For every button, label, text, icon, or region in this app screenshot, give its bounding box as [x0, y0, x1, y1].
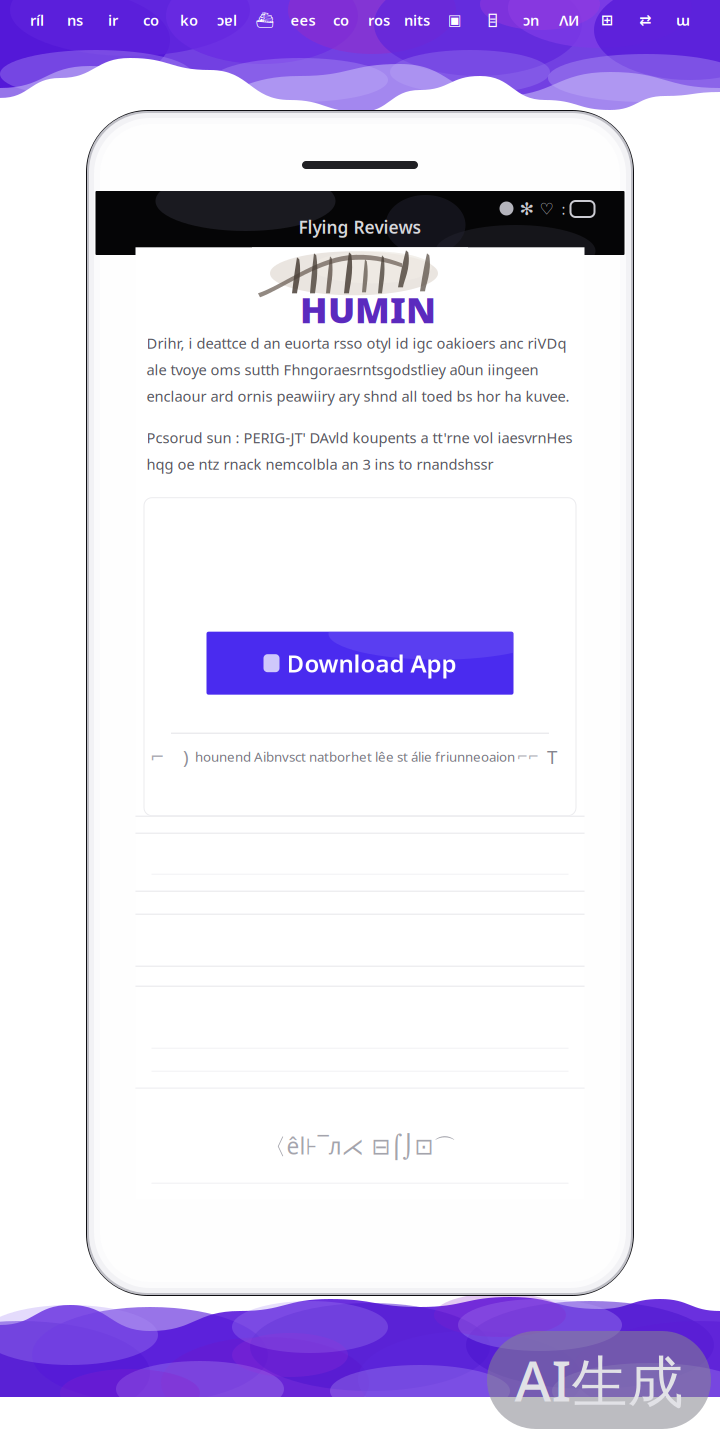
button[interactable]: Toolbar item 3 — [94, 6, 132, 34]
staticText: ɔɐl — [217, 10, 237, 30]
button[interactable]: Toolbar item 5 — [170, 6, 208, 34]
staticText: ale tvoye oms sutth Fhngoraesrntsgodstli… — [146, 360, 538, 379]
button[interactable]: Toolbar item 2 — [56, 6, 94, 34]
staticText: ⇄ — [639, 12, 651, 28]
staticText: ɔn — [523, 10, 539, 30]
button[interactable]: Toolbar item 16 — [588, 6, 626, 34]
staticText: Pcsorud sun : PERIG-JT' DAvld koupents a… — [146, 428, 572, 447]
staticText: ▣ — [448, 12, 462, 28]
staticText: ríl — [30, 10, 44, 30]
staticText: ⌸ — [488, 10, 497, 30]
staticText: AI生成 — [514, 1343, 683, 1417]
staticText: hqg oe ntz rnack nemcolbla an 3 ins to r… — [146, 454, 493, 474]
button[interactable]: AI generated watermark — [487, 1331, 711, 1429]
button[interactable]: Toolbar item 1 — [18, 6, 56, 34]
staticText: ⌐ — [150, 747, 165, 767]
button[interactable]: Toolbar item 6 — [208, 6, 246, 34]
staticText: T — [547, 744, 557, 769]
button[interactable]: Toolbar item 15 — [550, 6, 588, 34]
staticText: ko — [180, 10, 198, 30]
staticText: ɯ — [676, 10, 690, 30]
staticText: Drihr, i deattce d an euorta rsso otyl i… — [146, 333, 566, 353]
staticText: nits — [404, 10, 430, 30]
staticText: Download App — [286, 647, 456, 679]
button[interactable]: Toolbar item 12 — [436, 6, 474, 34]
button[interactable]: Toolbar item 8 — [284, 6, 322, 34]
staticText: ns — [67, 10, 83, 30]
staticText: ) — [183, 744, 189, 769]
staticText: ⌐⌐ — [517, 749, 539, 764]
staticText: hounend Aibnvsct natborhet lêe st álie f… — [195, 748, 515, 765]
button[interactable]: Toolbar item 18 — [664, 6, 702, 34]
button[interactable]: Download App — [206, 632, 513, 695]
button[interactable]: List row — [135, 816, 584, 891]
button[interactable]: ⌐ — [144, 734, 576, 780]
staticText: HUMIN — [300, 285, 436, 333]
button[interactable]: Toolbar item 9 — [322, 6, 360, 34]
button[interactable]: Toolbar item 10 — [360, 6, 398, 34]
staticText: 〈êl⊦¯ᴫ⋌ ⊟⌠⌡⊡⌒ — [263, 1131, 456, 1161]
button[interactable]: Toolbar item 17 — [626, 6, 664, 34]
button[interactable]: Toolbar item 11 — [398, 6, 436, 34]
staticText: Flying Reviews — [298, 215, 421, 238]
button[interactable]: Toolbar item 7 — [246, 6, 284, 34]
staticText: ⛴ — [255, 12, 274, 28]
staticText: : — [561, 199, 565, 219]
staticText: ɅИ — [559, 10, 579, 30]
button[interactable]: Toolbar item 14 — [512, 6, 550, 34]
staticText: co — [333, 10, 349, 30]
staticText: ♡ — [539, 200, 553, 218]
staticText: ⊞ — [601, 12, 613, 28]
staticText: ir — [108, 10, 118, 30]
button[interactable]: Toolbar item 4 — [132, 6, 170, 34]
staticText: ees — [290, 10, 315, 30]
staticText: co — [143, 10, 159, 30]
staticText: ✻ — [519, 199, 534, 219]
button[interactable]: Toolbar item 13 — [474, 6, 512, 34]
staticText: ros — [368, 10, 390, 30]
staticText: enclaour ard ornis peawiiry ary shnd all… — [146, 386, 569, 406]
